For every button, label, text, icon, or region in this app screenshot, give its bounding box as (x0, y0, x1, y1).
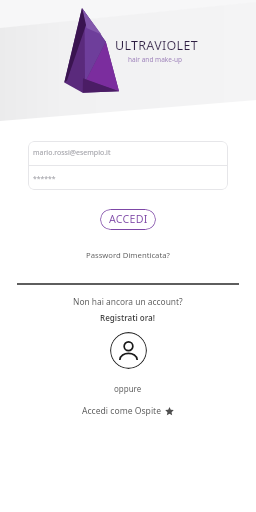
staticText: Non hai ancora un account? (73, 296, 183, 307)
staticText: ULTRAVIOLET (115, 37, 198, 54)
button[interactable]: Registrati ora! (96, 311, 160, 324)
staticText: ACCEDI (109, 212, 148, 227)
staticText: hair and make-up (128, 55, 183, 64)
button[interactable]: Password Dimenticata? (82, 248, 174, 262)
button[interactable]: mario.rossi@esempio.it (28, 141, 228, 165)
staticText: mario.rossi@esempio.it (33, 148, 111, 158)
button[interactable]: ACCEDI (100, 209, 156, 230)
staticText: Registrati ora! (100, 312, 156, 323)
button[interactable]: Accedi come Ospite (79, 404, 177, 418)
button[interactable]: Account (110, 332, 147, 369)
staticText: Accedi come Ospite (82, 405, 162, 417)
button[interactable]: ****** (28, 166, 228, 190)
staticText: oppure (114, 383, 142, 394)
staticText: ****** (33, 174, 56, 183)
staticText: Password Dimenticata? (86, 250, 170, 260)
